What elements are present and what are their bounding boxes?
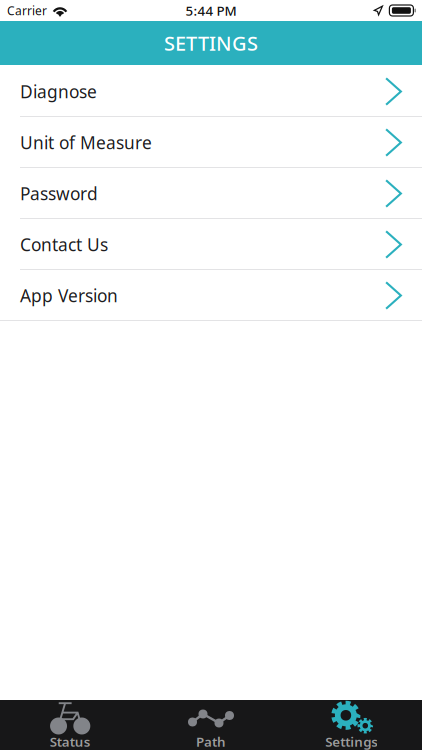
staticText: Path xyxy=(196,733,226,750)
staticText: Diagnose xyxy=(20,80,97,103)
staticText: Contact Us xyxy=(20,233,108,256)
staticText: App Version xyxy=(20,284,118,307)
button[interactable]: Status xyxy=(0,700,141,750)
button[interactable]: Diagnose xyxy=(0,66,422,117)
button[interactable]: App Version xyxy=(0,270,422,321)
button[interactable]: Contact Us xyxy=(0,219,422,270)
staticText: Password xyxy=(20,182,98,205)
button[interactable]: Path xyxy=(141,700,281,750)
staticText: Unit of Measure xyxy=(20,131,152,154)
button[interactable]: Unit of Measure xyxy=(0,117,422,168)
staticText: SETTINGS xyxy=(164,30,258,56)
staticText: Settings xyxy=(325,733,378,750)
staticText: 5:44 PM xyxy=(185,2,236,19)
staticText: Carrier xyxy=(7,2,47,18)
button[interactable]: Settings xyxy=(281,700,422,750)
button[interactable]: Password xyxy=(0,168,422,219)
staticText: Status xyxy=(50,733,91,750)
